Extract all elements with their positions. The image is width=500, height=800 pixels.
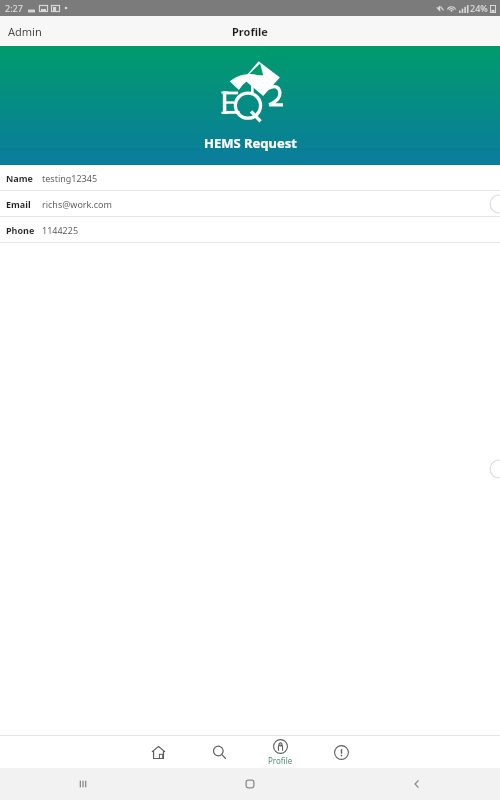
staticText: HEMS Request [204, 134, 297, 152]
staticText: Admin [8, 24, 42, 39]
button[interactable]: Home [166, 768, 333, 800]
staticText: Profile [232, 24, 268, 39]
button[interactable]: Name [0, 165, 500, 191]
button[interactable]: Admin [0, 20, 50, 43]
staticText: testing12345 [42, 172, 98, 184]
staticText: 2:27 [5, 2, 23, 14]
staticText: Profile [268, 755, 293, 766]
button[interactable]: Recent apps [0, 768, 166, 800]
staticText: 1144225 [42, 224, 79, 236]
staticText: Phone [6, 224, 35, 236]
button[interactable]: Phone [0, 217, 500, 243]
button[interactable]: Info [315, 736, 367, 768]
button[interactable]: Back [333, 768, 500, 800]
button[interactable]: Profile [254, 736, 306, 768]
button[interactable]: Home [132, 736, 184, 768]
button[interactable]: Email [0, 191, 500, 217]
button[interactable]: Search [193, 736, 245, 768]
staticText: Email [6, 198, 31, 210]
staticText: 24% [470, 2, 488, 14]
staticText: Name [6, 172, 33, 184]
staticText: richs@work.com [42, 198, 112, 210]
